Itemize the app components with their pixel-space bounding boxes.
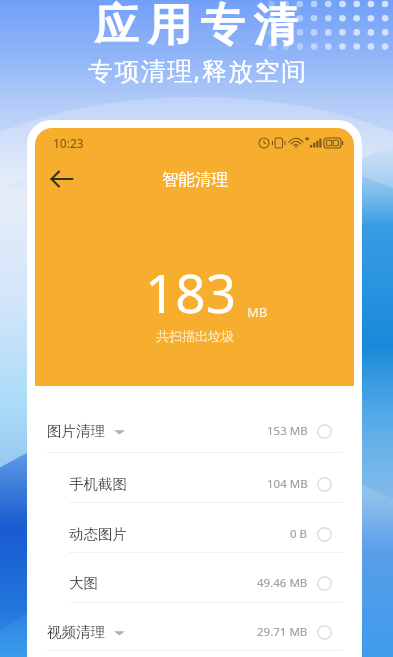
staticText: 104 MB [267,476,308,492]
button[interactable]: 手机截图 [35,453,354,503]
staticText: 共扫描出垃圾 [156,328,234,344]
staticText: 动态图片 [69,525,127,543]
button[interactable]: Back [41,158,83,200]
staticText: 153 MB [267,423,308,439]
button[interactable]: 大图 [35,553,354,603]
staticText: 智能清理 [162,169,228,190]
button[interactable]: 图片清理 [35,410,354,453]
staticText: 大图 [69,574,98,592]
staticText: 应用专清 [90,0,302,53]
button[interactable]: 动态图片 [35,503,354,553]
staticText: 49.46 MB [257,575,308,591]
staticText: 手机截图 [69,475,127,493]
button[interactable]: 视频清理 [35,603,354,651]
staticText: 图片清理 [47,422,105,440]
staticText: MB [247,303,268,321]
staticText: 0 B [290,526,308,542]
staticText: 专项清理,释放空间 [88,53,308,87]
staticText: 29.71 MB [257,624,308,640]
staticText: 视频清理 [47,623,105,641]
staticText: 10:23 [53,135,84,151]
staticText: 183 [145,256,236,328]
